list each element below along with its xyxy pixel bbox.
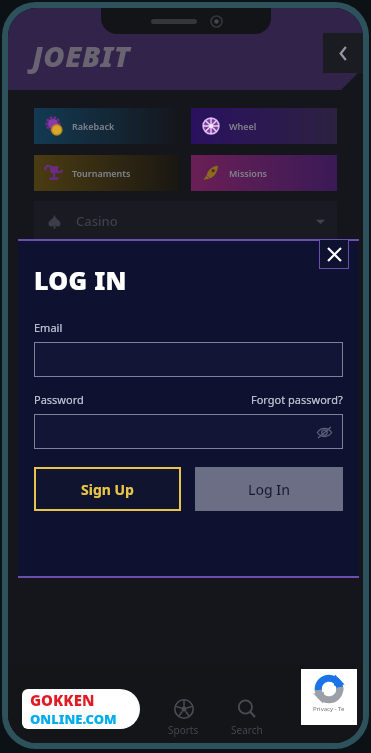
staticText: Privacy - Te xyxy=(313,705,345,713)
staticText: Sports xyxy=(168,723,199,737)
button[interactable]: Search xyxy=(221,694,273,741)
button[interactable]: Tournaments xyxy=(34,155,179,191)
button[interactable] xyxy=(34,342,343,377)
button[interactable]: Casino xyxy=(34,201,337,241)
staticText: Sign Up xyxy=(81,480,134,499)
button[interactable]: Missions xyxy=(191,155,337,191)
button[interactable]: Sports xyxy=(158,694,209,741)
staticText: Forgot password? xyxy=(251,392,343,407)
button[interactable]: Forgot password? xyxy=(251,392,343,407)
staticText: JOEBIT xyxy=(32,36,131,75)
staticText: Missions xyxy=(229,167,268,179)
staticText: Log In xyxy=(248,480,291,499)
button[interactable]: Wheel xyxy=(191,108,337,144)
button[interactable]: Close xyxy=(319,239,349,269)
staticText: Wheel xyxy=(229,120,257,132)
button[interactable]: Back xyxy=(323,33,363,73)
staticText: GOKKEN xyxy=(30,690,95,710)
button[interactable]: Privacy - Te xyxy=(301,669,357,725)
button[interactable]: Show password xyxy=(314,422,334,442)
button[interactable]: Show password xyxy=(34,414,343,449)
button[interactable]: Log In xyxy=(195,467,343,511)
button[interactable]: Rakeback xyxy=(34,108,179,144)
button[interactable]: GOKKEN xyxy=(22,689,140,729)
staticText: Search xyxy=(231,723,263,737)
staticText: Rakeback xyxy=(72,120,115,132)
staticText: Casino xyxy=(76,212,118,230)
staticText: Email xyxy=(34,320,63,335)
staticText: Password xyxy=(34,392,84,407)
staticText: LOG IN xyxy=(34,263,127,297)
button[interactable]: Sign Up xyxy=(34,467,181,511)
staticText: ONLINE.COM xyxy=(30,710,117,728)
staticText: Tournaments xyxy=(72,167,131,179)
